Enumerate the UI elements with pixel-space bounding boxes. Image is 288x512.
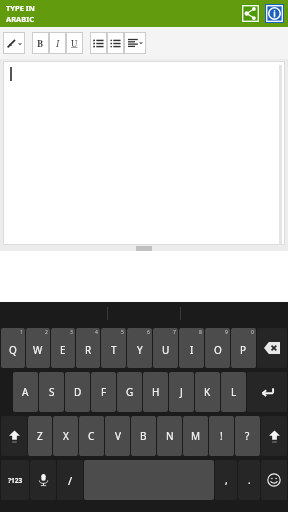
staticText: W (33, 343, 43, 357)
button[interactable]: ! (209, 416, 234, 456)
staticText: S (49, 385, 55, 399)
button[interactable]: B (131, 416, 156, 456)
button[interactable]: Info (264, 3, 285, 24)
staticText: Q (9, 343, 17, 357)
button[interactable]: 6 (127, 328, 152, 368)
staticText: I (56, 37, 60, 49)
staticText: ?123 (8, 476, 23, 485)
button[interactable]: Shift (261, 416, 287, 456)
staticText: F (101, 385, 107, 399)
staticText: 4 (95, 329, 98, 336)
button[interactable]: Enter (247, 372, 287, 412)
staticText: 2 (45, 329, 48, 336)
staticText: . (248, 473, 251, 487)
button[interactable]: V (105, 416, 130, 456)
button[interactable]: 5 (101, 328, 126, 368)
staticText: 6 (147, 329, 150, 336)
button[interactable]: 2 (26, 328, 50, 368)
button[interactable] (107, 32, 124, 54)
staticText: TYPE IN (6, 3, 35, 13)
staticText: Z (37, 429, 43, 443)
button[interactable]: F (91, 372, 116, 412)
staticText: , (225, 473, 228, 487)
button[interactable]: Emoji (261, 460, 287, 500)
staticText: D (74, 385, 82, 399)
button[interactable]: 3 (51, 328, 75, 368)
button[interactable]: ? (235, 416, 260, 456)
button[interactable]: S (39, 372, 64, 412)
staticText: ! (220, 429, 223, 443)
staticText: 3 (70, 329, 73, 336)
staticText: J (180, 385, 183, 399)
staticText: 0 (251, 329, 254, 336)
staticText: L (231, 385, 237, 399)
staticText: P (240, 343, 247, 357)
button[interactable]: C (79, 416, 104, 456)
button[interactable]: J (169, 372, 194, 412)
button[interactable] (3, 32, 25, 54)
button[interactable]: / (57, 460, 83, 500)
staticText: V (115, 429, 121, 443)
button[interactable]: 0 (231, 328, 256, 368)
button[interactable] (3, 61, 285, 245)
staticText: 9 (225, 329, 228, 336)
button[interactable]: D (65, 372, 90, 412)
staticText: N (166, 429, 174, 443)
staticText: O (214, 343, 222, 357)
button[interactable]: M (183, 416, 208, 456)
staticText: Y (137, 343, 143, 357)
button[interactable]: , (215, 460, 237, 500)
staticText: ? (245, 429, 250, 443)
button[interactable]: 9 (205, 328, 230, 368)
button[interactable]: X (53, 416, 78, 456)
button[interactable]: 1 (1, 328, 25, 368)
button[interactable]: ?123 (1, 460, 29, 500)
staticText: 5 (121, 329, 124, 336)
button[interactable]: Shift (1, 416, 27, 456)
button[interactable]: A (13, 372, 38, 412)
staticText: U (71, 37, 78, 49)
button[interactable]: B (32, 32, 49, 54)
staticText: U (162, 343, 170, 357)
button[interactable]: K (195, 372, 220, 412)
button[interactable]: Voice input (30, 460, 56, 500)
button[interactable]: Share (240, 3, 261, 24)
staticText: X (63, 429, 69, 443)
button[interactable] (124, 32, 146, 54)
staticText: H (152, 385, 160, 399)
button[interactable] (90, 32, 107, 54)
button[interactable]: Backspace (257, 328, 287, 368)
staticText: T (111, 343, 117, 357)
staticText: M (191, 429, 201, 443)
button[interactable]: I (49, 32, 66, 54)
button[interactable]: 8 (179, 328, 204, 368)
staticText: A (22, 385, 29, 399)
button[interactable]: N (157, 416, 182, 456)
button[interactable]: L (221, 372, 246, 412)
button[interactable]: . (238, 460, 260, 500)
staticText: K (204, 385, 211, 399)
staticText: B (140, 429, 147, 443)
staticText: E (60, 343, 66, 357)
staticText: 8 (199, 329, 202, 336)
button[interactable]: U (66, 32, 83, 54)
button[interactable]: 7 (153, 328, 178, 368)
staticText: ARABIC (6, 14, 35, 24)
button[interactable]: H (143, 372, 168, 412)
staticText: C (88, 429, 95, 443)
staticText: 1 (20, 329, 23, 336)
button[interactable]: Z (28, 416, 52, 456)
staticText: R (85, 343, 92, 357)
staticText: 7 (173, 329, 176, 336)
button[interactable]: G (117, 372, 142, 412)
staticText: I (190, 343, 194, 357)
staticText: / (68, 473, 73, 488)
button[interactable]: 4 (76, 328, 100, 368)
staticText: G (126, 385, 134, 399)
staticText: B (37, 37, 44, 49)
